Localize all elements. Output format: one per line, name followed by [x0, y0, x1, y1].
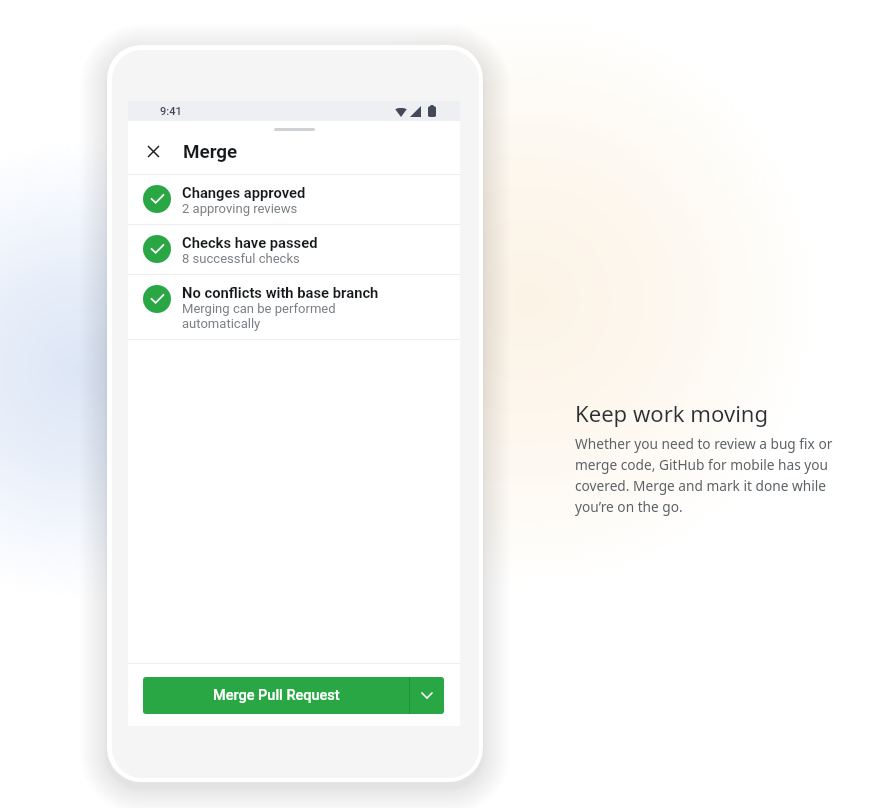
button[interactable]: Close: [128, 125, 176, 178]
staticText: automatically: [182, 316, 261, 331]
button[interactable]: Merge Pull Request: [143, 677, 409, 714]
staticText: Keep work moving: [575, 398, 769, 428]
staticText: Merge: [183, 141, 238, 163]
button[interactable]: Changes approved: [128, 175, 460, 224]
staticText: 2 approving reviews: [182, 201, 298, 216]
staticText: Whether you need to review a bug fix or …: [575, 434, 838, 516]
staticText: Merge Pull Request: [213, 687, 340, 704]
staticText: No conflicts with base branch: [182, 284, 379, 301]
button[interactable]: No conflicts with base branch: [128, 275, 460, 339]
button[interactable]: Checks have passed: [128, 225, 460, 274]
staticText: Checks have passed: [182, 234, 318, 251]
staticText: Changes approved: [182, 184, 306, 201]
staticText: 8 successful checks: [182, 251, 300, 266]
staticText: Merging can be performed: [182, 301, 336, 316]
staticText: 9:41: [160, 105, 182, 118]
button[interactable]: More merge options: [410, 677, 444, 714]
